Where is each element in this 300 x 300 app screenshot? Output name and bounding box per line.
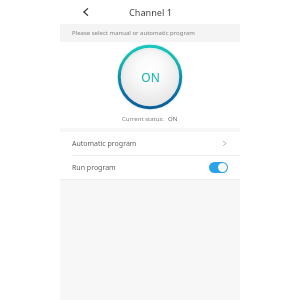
button[interactable]: Back bbox=[78, 4, 94, 20]
staticText: Automatic program bbox=[72, 139, 221, 149]
button[interactable]: Automatic program bbox=[60, 132, 240, 155]
button[interactable]: Run program, on bbox=[209, 162, 228, 173]
button[interactable]: Run program bbox=[60, 156, 240, 179]
staticText: ON bbox=[141, 69, 160, 85]
staticText: Channel 1 bbox=[129, 6, 172, 18]
staticText: Run program bbox=[72, 163, 209, 173]
staticText: Current status: bbox=[122, 115, 168, 123]
button[interactable]: Toggle channel power, currently ON bbox=[117, 44, 183, 110]
staticText: Please select manual or automatic progra… bbox=[72, 29, 195, 37]
staticText: ON bbox=[168, 115, 178, 123]
